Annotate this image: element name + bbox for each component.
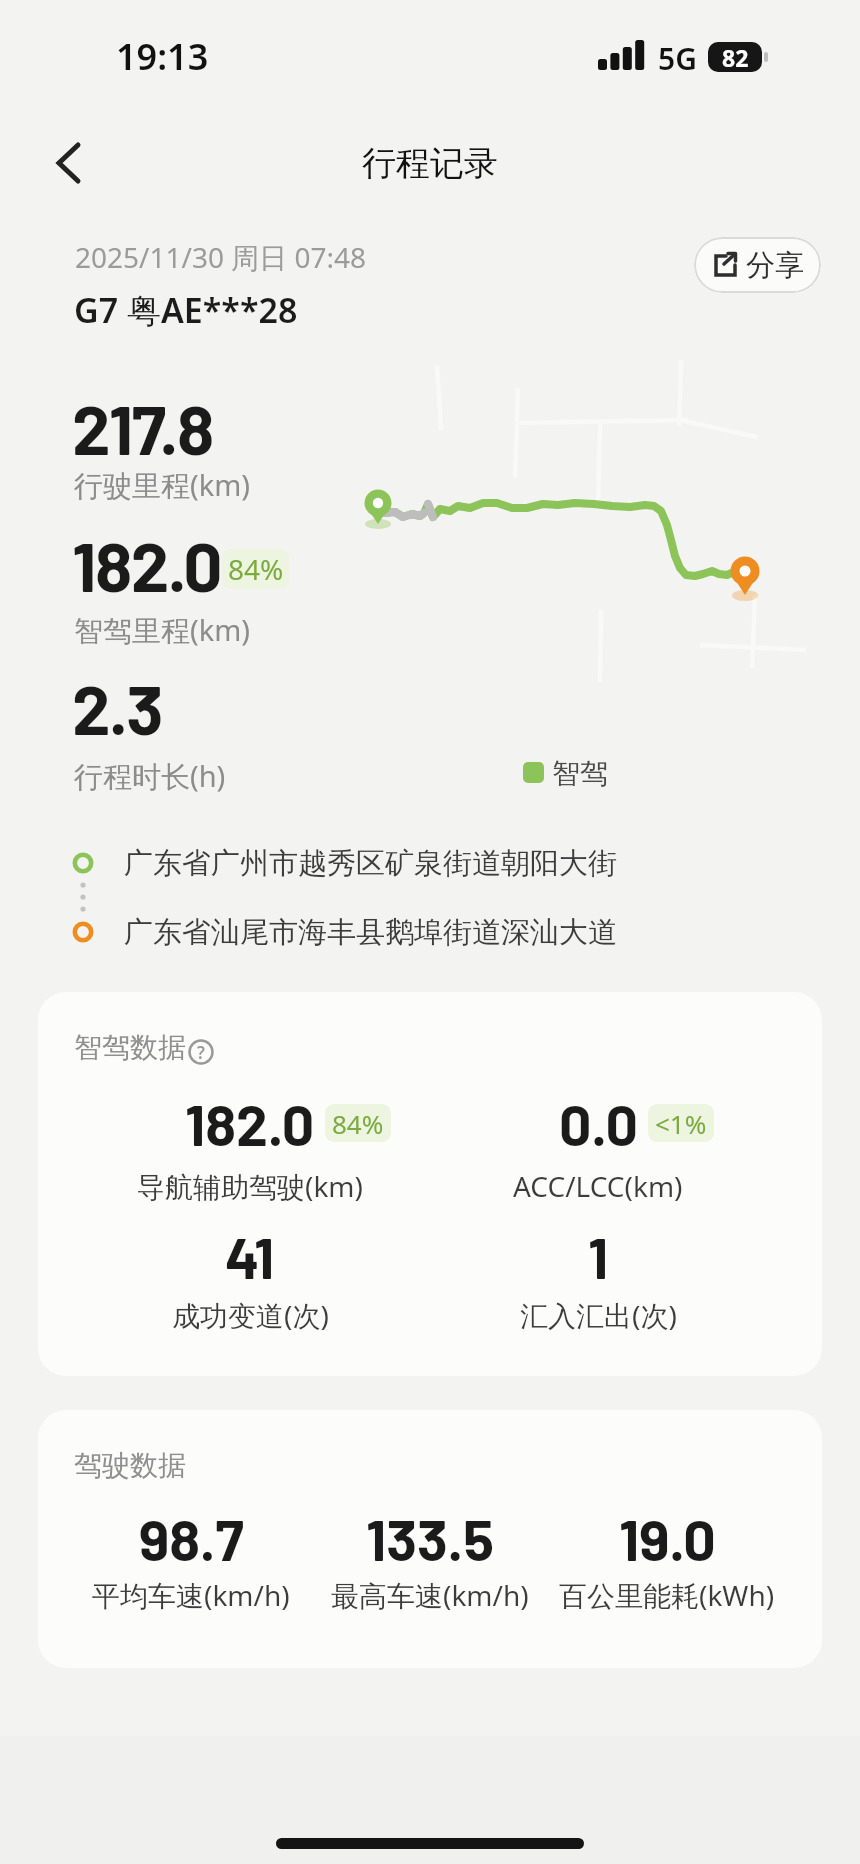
staticText: 分享 — [746, 247, 804, 284]
staticText: 百公里能耗(kWh) — [559, 1576, 775, 1614]
staticText: 驾驶数据 — [74, 1448, 186, 1483]
staticText: 行程记录 — [0, 142, 860, 185]
staticText: 1 — [588, 1222, 609, 1290]
button[interactable] — [52, 142, 82, 184]
staticText: 智驾 — [552, 756, 608, 791]
staticText: 智驾里程(km) — [74, 610, 251, 650]
staticText: 19.0 — [619, 1504, 716, 1572]
staticText: 5G — [658, 38, 697, 79]
staticText: 导航辅助驾驶(km) — [137, 1167, 363, 1205]
button[interactable]: 分享 — [694, 237, 821, 293]
staticText: 汇入汇出(次) — [520, 1296, 677, 1334]
staticText: 行程时长(h) — [74, 756, 226, 796]
staticText: G7 粤AE***28 — [74, 287, 298, 333]
staticText: <1% — [655, 1106, 707, 1141]
staticText: 行驶里程(km) — [74, 465, 251, 505]
staticText: 98.7 — [139, 1504, 244, 1572]
staticText: 平均车速(km/h) — [92, 1576, 290, 1614]
staticText: 182.0 — [185, 1089, 315, 1157]
staticText: 84% — [332, 1106, 384, 1141]
staticText: 2.3 — [72, 666, 163, 749]
staticText: ? — [197, 1041, 205, 1064]
staticText: 成功变道(次) — [172, 1296, 329, 1334]
staticText: 41 — [225, 1222, 275, 1290]
staticText: 182.0 — [72, 523, 222, 606]
staticText: 84% — [228, 550, 284, 588]
staticText: 19:13 — [116, 32, 209, 81]
staticText: 最高车速(km/h) — [331, 1576, 529, 1614]
staticText: 广东省广州市越秀区矿泉街道朝阳大街 — [124, 845, 617, 882]
staticText: 广东省汕尾市海丰县鹅埠街道深汕大道 — [124, 914, 617, 951]
staticText: 82 — [722, 42, 749, 72]
staticText: 133.5 — [366, 1504, 494, 1572]
staticText: 2025/11/30 周日 07:48 — [75, 238, 367, 276]
staticText: 智驾数据 — [74, 1030, 186, 1065]
staticText: 217.8 — [72, 386, 213, 469]
staticText: 0.0 — [559, 1089, 638, 1157]
staticText: ACC/LCC(km) — [513, 1167, 683, 1205]
